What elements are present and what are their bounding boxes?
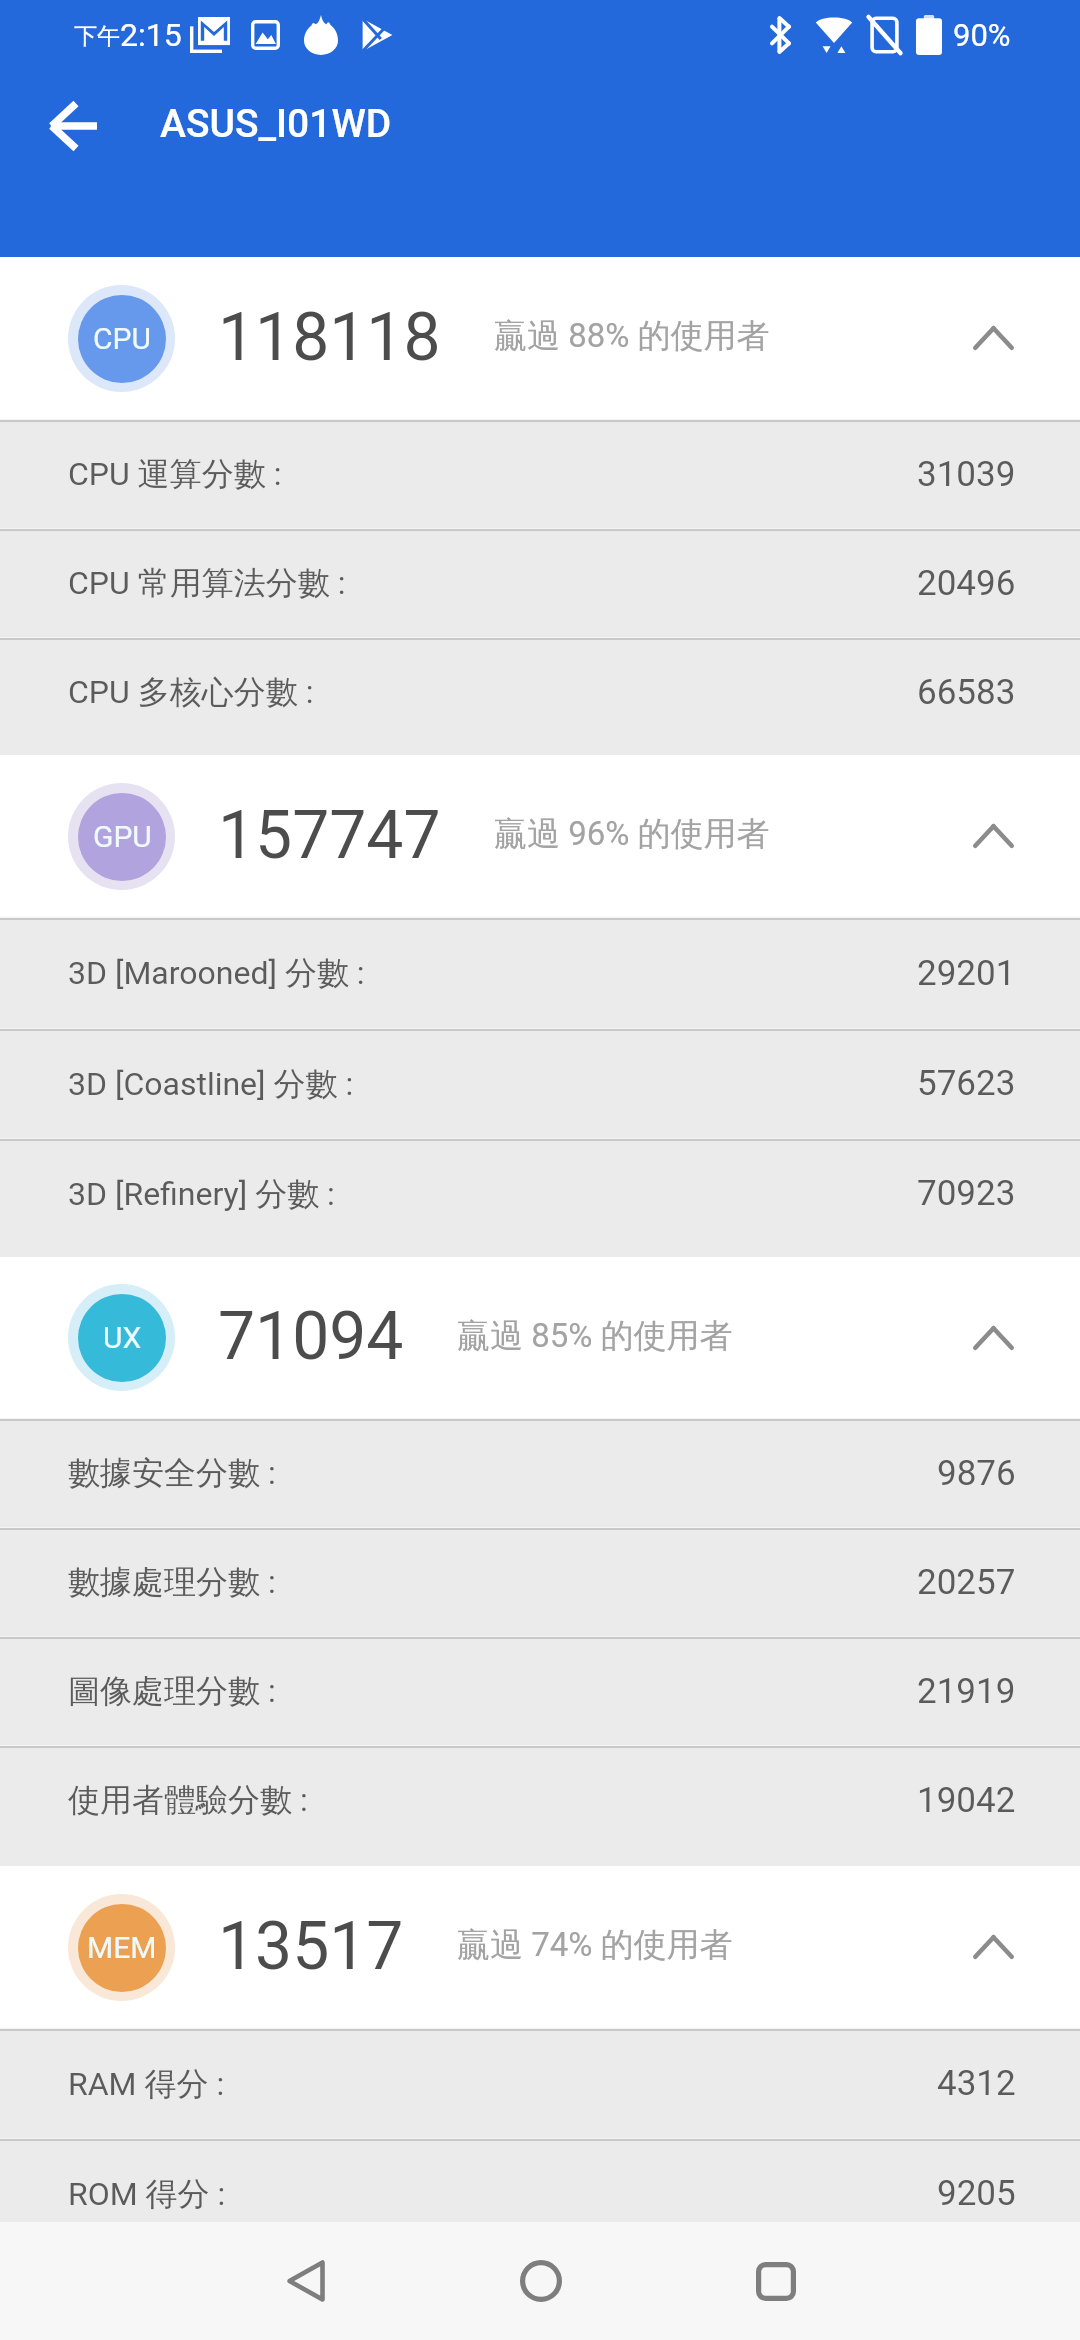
staticText: 70923	[917, 1173, 1016, 1214]
button[interactable]: CPU	[0, 257, 1080, 419]
staticText: 13517	[218, 1908, 404, 1985]
staticText: 20496	[917, 563, 1016, 604]
staticText: 57623	[917, 1063, 1016, 1104]
button[interactable]: 使用者體驗分數 :	[0, 1748, 1080, 1854]
staticText: MEM	[87, 1930, 157, 1965]
staticText: 71094	[218, 1298, 404, 1375]
staticText: CPU 多核心分數 :	[68, 672, 314, 712]
staticText: 圖像處理分數 :	[68, 1671, 276, 1711]
button[interactable]: Collapse	[948, 791, 1038, 881]
button[interactable]: UX	[0, 1257, 1080, 1418]
button[interactable]: Collapse	[948, 1902, 1038, 1992]
staticText: ROM 得分 :	[68, 2174, 226, 2214]
staticText: 數據安全分數 :	[68, 1453, 276, 1493]
staticText: RAM 得分 :	[68, 2064, 225, 2104]
staticText: 90%	[953, 17, 1011, 53]
staticText: 贏過 74% 的使用者	[457, 1924, 733, 1966]
staticText: UX	[103, 1320, 142, 1355]
button[interactable]: 3D [Marooned] 分數 :	[0, 920, 1080, 1028]
button[interactable]: 3D [Coastline] 分數 :	[0, 1031, 1080, 1138]
staticText: 66583	[917, 672, 1016, 713]
staticText: 157747	[218, 797, 441, 874]
button[interactable]: CPU 常用算法分數 :	[0, 531, 1080, 637]
button[interactable]: GPU	[0, 755, 1080, 917]
staticText: 20257	[917, 1562, 1016, 1603]
button[interactable]: Home	[478, 2222, 603, 2340]
staticText: 2:15	[120, 16, 182, 54]
staticText: 118118	[218, 299, 441, 376]
button[interactable]: 數據處理分數 :	[0, 1530, 1080, 1636]
button[interactable]: Back	[243, 2222, 368, 2340]
staticText: GPU	[93, 819, 152, 854]
staticText: 9205	[937, 2173, 1016, 2214]
staticText: 3D [Coastline] 分數 :	[68, 1064, 354, 1104]
staticText: 贏過 96% 的使用者	[494, 813, 770, 855]
button[interactable]: MEM	[0, 1866, 1080, 2028]
button[interactable]: ROM 得分 :	[0, 2141, 1080, 2222]
staticText: CPU 運算分數 :	[68, 454, 282, 494]
staticText: 贏過 85% 的使用者	[457, 1315, 733, 1357]
button[interactable]: 3D [Refinery] 分數 :	[0, 1141, 1080, 1248]
button[interactable]: 數據安全分數 :	[0, 1421, 1080, 1527]
button[interactable]: RAM 得分 :	[0, 2031, 1080, 2138]
button[interactable]: Recents	[713, 2222, 838, 2340]
staticText: 19042	[917, 1780, 1016, 1821]
button[interactable]: Collapse	[948, 293, 1038, 383]
staticText: ASUS_I01WD	[160, 101, 392, 147]
staticText: 21919	[917, 1671, 1016, 1712]
staticText: 使用者體驗分數 :	[68, 1780, 308, 1820]
staticText: 3D [Marooned] 分數 :	[68, 953, 365, 993]
staticText: CPU	[93, 321, 151, 356]
staticText: 29201	[917, 953, 1016, 994]
staticText: 3D [Refinery] 分數 :	[68, 1174, 335, 1214]
button[interactable]: CPU 多核心分數 :	[0, 640, 1080, 746]
button[interactable]: Collapse	[948, 1293, 1038, 1383]
button[interactable]: CPU 運算分數 :	[0, 422, 1080, 528]
staticText: 贏過 88% 的使用者	[494, 315, 770, 357]
staticText: 4312	[937, 2063, 1016, 2104]
staticText: CPU 常用算法分數 :	[68, 563, 346, 603]
staticText: 下午	[74, 22, 120, 51]
button[interactable]: 圖像處理分數 :	[0, 1639, 1080, 1745]
staticText: 數據處理分數 :	[68, 1562, 276, 1602]
button[interactable]: Back	[24, 78, 120, 174]
staticText: 31039	[917, 454, 1016, 495]
staticText: 9876	[937, 1453, 1016, 1494]
